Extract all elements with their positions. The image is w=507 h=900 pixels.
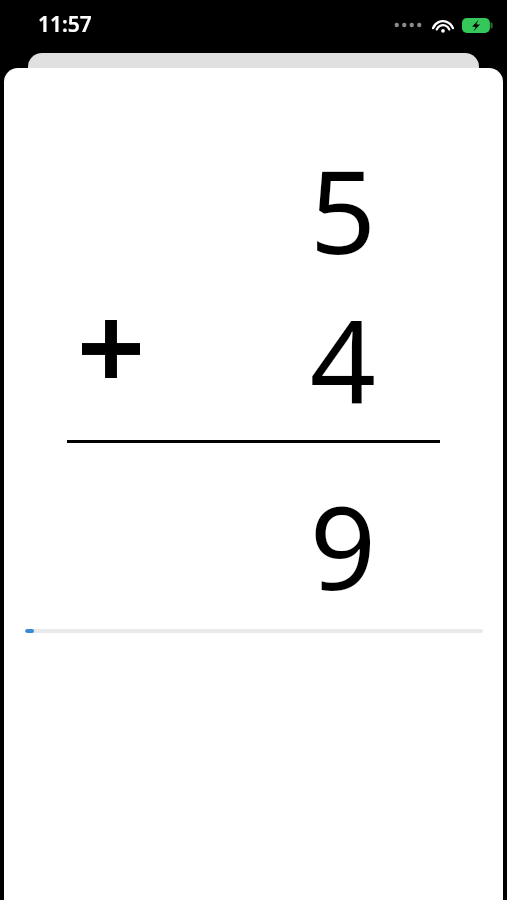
staticText: 5 [232, 130, 376, 288]
button[interactable]: 5 [4, 68, 503, 900]
staticText: 4 [232, 280, 376, 438]
staticText: 11:57 [38, 10, 92, 39]
other: Plus [82, 320, 140, 378]
button[interactable] [25, 629, 483, 633]
staticText: 9 [232, 466, 376, 624]
